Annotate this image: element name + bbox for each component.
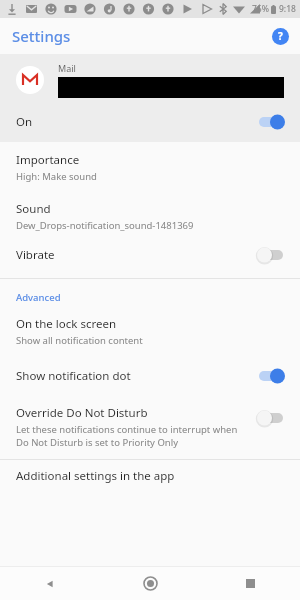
staticText: Advanced bbox=[16, 291, 61, 304]
button[interactable]: Override Do Not Disturb bbox=[0, 397, 300, 459]
staticText: Settings bbox=[12, 26, 71, 46]
staticText: Show notification dot bbox=[16, 368, 131, 384]
button[interactable]: Show notification dot bbox=[0, 359, 300, 393]
button[interactable]: Back bbox=[0, 567, 100, 600]
staticText: Mail bbox=[58, 62, 76, 74]
button[interactable]: Sound bbox=[0, 189, 300, 238]
button[interactable]: Settings bbox=[12, 26, 71, 46]
staticText: On bbox=[16, 114, 33, 130]
button[interactable]: Advanced bbox=[0, 289, 300, 310]
staticText: Show all notification content bbox=[16, 334, 143, 347]
button[interactable]: On the lock screen bbox=[0, 316, 300, 353]
button[interactable]: On bbox=[0, 106, 300, 138]
staticText: Dew_Drops-notification_sound-1481369 bbox=[16, 219, 194, 232]
staticText: 9:18 bbox=[279, 3, 296, 15]
button[interactable]: Recents bbox=[200, 567, 300, 600]
staticText: Sound bbox=[16, 201, 51, 217]
staticText: High: Make sound bbox=[16, 170, 97, 183]
staticText: Importance bbox=[16, 152, 80, 168]
staticText: Let these notifications continue to inte… bbox=[16, 423, 246, 449]
button[interactable]: Importance bbox=[0, 142, 300, 189]
button[interactable]: Help bbox=[268, 24, 292, 48]
staticText: On the lock screen bbox=[16, 316, 117, 332]
staticText: 76% bbox=[252, 3, 269, 15]
staticText: Vibrate bbox=[16, 247, 55, 263]
staticText: Override Do Not Disturb bbox=[16, 405, 148, 421]
button[interactable]: Vibrate bbox=[0, 238, 300, 272]
staticText: Additional settings in the app bbox=[16, 468, 175, 484]
button[interactable]: Home bbox=[100, 567, 200, 600]
staticText: ? bbox=[278, 29, 283, 43]
button[interactable]: Additional settings in the app bbox=[0, 460, 300, 492]
